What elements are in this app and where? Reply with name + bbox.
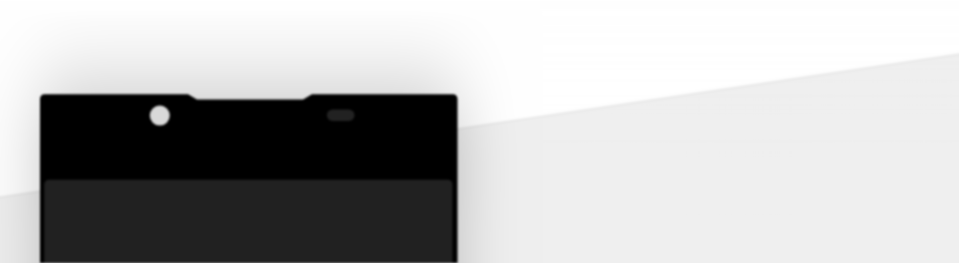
button[interactable]: Phone product shot bbox=[40, 94, 458, 263]
